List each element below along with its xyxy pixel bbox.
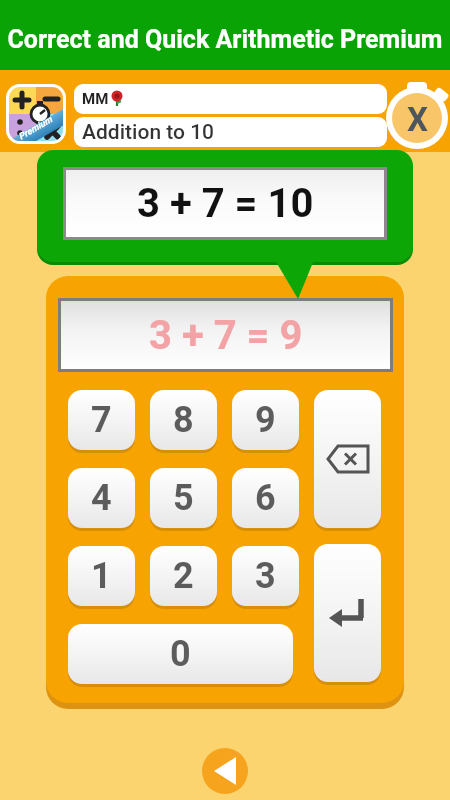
staticText: 3 + 7 = 10: [137, 180, 314, 227]
button[interactable]: [314, 544, 381, 682]
button[interactable]: 8: [150, 390, 217, 450]
staticText: 1: [91, 555, 112, 597]
staticText: Correct and Quick Arithmetic Premium: [7, 25, 443, 54]
staticText: X: [407, 100, 428, 139]
button[interactable]: [314, 390, 381, 528]
staticText: 7: [91, 399, 112, 441]
staticText: 0: [170, 633, 191, 675]
button[interactable]: Premium: [6, 84, 66, 144]
button[interactable]: 3: [232, 546, 299, 606]
staticText: 5: [173, 477, 194, 519]
button[interactable]: 0: [68, 624, 293, 684]
button[interactable]: MM: [74, 84, 387, 114]
staticText: 3 + 7 = 9: [149, 312, 303, 359]
button[interactable]: X: [384, 80, 450, 150]
staticText: 3: [255, 555, 276, 597]
staticText: 2: [173, 555, 194, 597]
button[interactable]: 4: [68, 468, 135, 528]
staticText: 6: [255, 477, 276, 519]
staticText: MM: [82, 90, 109, 108]
button[interactable]: 5: [150, 468, 217, 528]
button[interactable]: 2: [150, 546, 217, 606]
staticText: 8: [173, 399, 194, 441]
button[interactable]: 9: [232, 390, 299, 450]
staticText: Addition to 10: [82, 120, 215, 145]
staticText: 9: [255, 399, 276, 441]
staticText: Premium: [17, 114, 54, 142]
button[interactable]: Addition to 10: [74, 117, 387, 147]
button[interactable]: 7: [68, 390, 135, 450]
button[interactable]: 1: [68, 546, 135, 606]
staticText: 4: [91, 477, 112, 519]
button[interactable]: 6: [232, 468, 299, 528]
button[interactable]: [202, 748, 248, 794]
